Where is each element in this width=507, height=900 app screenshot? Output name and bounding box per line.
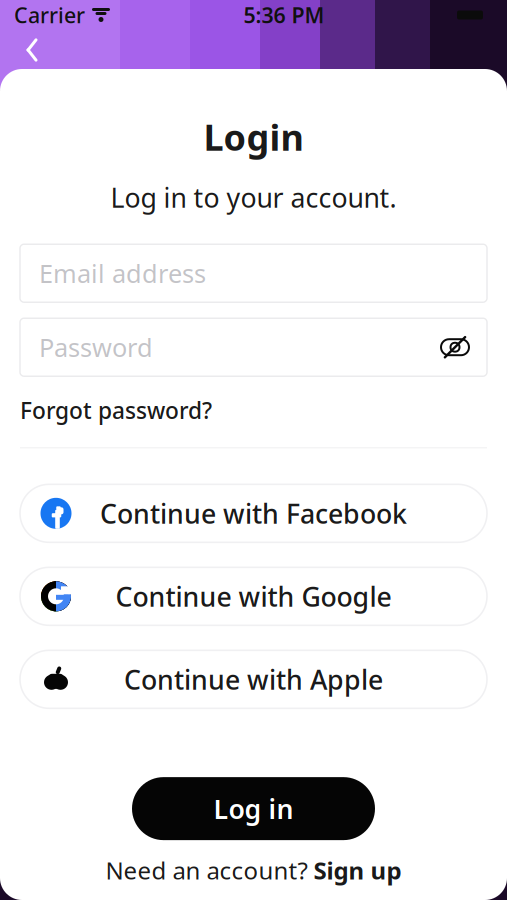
staticText: Continue with Apple [124, 662, 383, 697]
staticText: Login [203, 113, 303, 161]
staticText: Need an account? [105, 854, 313, 886]
staticText: Forgot password? [20, 395, 212, 425]
button[interactable]: Continue with Facebook [0, 484, 507, 542]
button[interactable]: Back [10, 30, 54, 70]
staticText: Log in [213, 791, 293, 826]
staticText: 5:36 PM [243, 1, 324, 29]
button[interactable]: Show password [435, 327, 475, 367]
staticText: Continue with Google [115, 579, 391, 614]
staticText: Continue with Facebook [100, 496, 407, 531]
staticText: Password [39, 330, 153, 364]
staticText: Carrier [14, 1, 85, 29]
button[interactable]: Continue with Google [0, 567, 507, 625]
button[interactable]: Continue with Apple [0, 650, 507, 708]
button[interactable]: Log in [132, 777, 375, 840]
staticText: Log in to your account. [110, 180, 396, 215]
button[interactable]: Forgot password? [20, 395, 212, 425]
button[interactable]: Need an account? [105, 854, 401, 886]
staticText: Sign up [313, 854, 401, 886]
staticText: Email address [39, 256, 206, 290]
